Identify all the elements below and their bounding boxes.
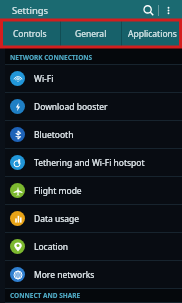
staticText: Tethering and Wi-Fi hotspot: [34, 157, 145, 169]
staticText: Applications: [128, 28, 177, 40]
button[interactable]: Download booster: [0, 93, 182, 120]
button[interactable]: Bluetooth: [0, 121, 182, 148]
staticText: Location: [34, 241, 69, 253]
staticText: Wi-Fi: [34, 73, 54, 85]
staticText: CONNECT AND SHARE: [10, 291, 81, 300]
staticText: NETWORK CONNECTIONS: [10, 53, 93, 62]
button[interactable]: Tethering and Wi-Fi hotspot: [0, 149, 182, 176]
button[interactable]: Search: [138, 0, 158, 20]
button[interactable]: Applications: [122, 20, 182, 47]
staticText: General: [75, 28, 107, 40]
staticText: More networks: [34, 269, 95, 281]
button[interactable]: Data usage: [0, 205, 182, 232]
staticText: Bluetooth: [34, 129, 74, 141]
staticText: Data usage: [34, 213, 80, 225]
staticText: Settings: [12, 4, 49, 17]
button[interactable]: More options: [159, 1, 177, 19]
staticText: Flight mode: [34, 185, 82, 197]
staticText: Controls: [13, 28, 47, 40]
button[interactable]: General: [61, 20, 121, 47]
button[interactable]: More networks: [0, 261, 182, 288]
button[interactable]: Wi-Fi: [0, 65, 182, 92]
button[interactable]: Controls: [0, 20, 60, 47]
staticText: Download booster: [34, 101, 108, 113]
button[interactable]: Location: [0, 233, 182, 260]
button[interactable]: Flight mode: [0, 177, 182, 204]
